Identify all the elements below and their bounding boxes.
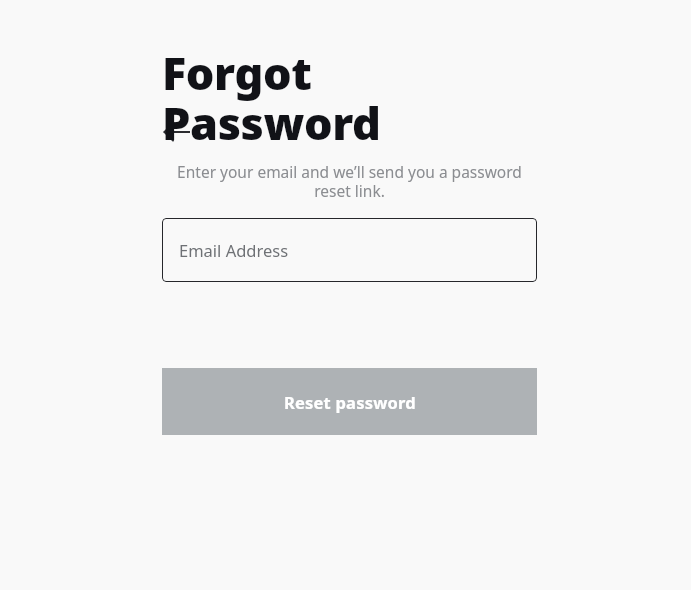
staticText: Forgot Password xyxy=(162,42,537,153)
staticText: Reset password xyxy=(284,391,416,413)
button[interactable]: Back xyxy=(162,114,198,150)
button[interactable]: Reset password xyxy=(162,368,537,435)
staticText: Email Address xyxy=(179,239,289,261)
staticText: Enter your email and we’ll send you a pa… xyxy=(162,161,537,201)
button[interactable]: Email Address xyxy=(162,218,537,282)
